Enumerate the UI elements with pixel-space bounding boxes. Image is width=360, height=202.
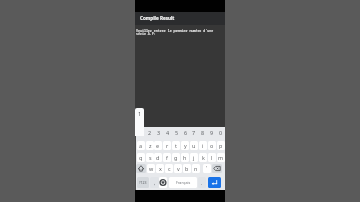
staticText: 9 [210,129,214,136]
button[interactable]: 4 [163,129,172,136]
staticText: 3 [157,129,161,136]
button[interactable]: ' [203,164,211,173]
staticText: 4 [166,129,170,136]
button[interactable]: x [156,164,164,173]
staticText: b [185,165,189,172]
button[interactable]: d [154,153,162,162]
staticText: t [175,142,177,149]
button[interactable]: q [137,153,145,162]
button[interactable] [208,177,221,188]
staticText: Compile Result [140,15,175,21]
staticText: 0 [219,129,223,136]
button[interactable]: n [192,164,200,173]
button[interactable]: 3 [154,129,163,136]
staticText: 7 [192,129,196,136]
button[interactable]: 0 [216,129,225,136]
button[interactable]: p [217,141,225,150]
staticText: ?123 [139,180,147,185]
staticText: z [149,142,152,149]
button[interactable]: l [208,153,216,162]
staticText: 1 [138,110,142,117]
button[interactable]: o [208,141,216,150]
button[interactable]: b [183,164,191,173]
staticText: c [168,165,171,172]
button[interactable]: 9 [207,129,216,136]
staticText: , [154,180,156,186]
staticText: 6 [184,129,188,136]
button[interactable]: m [217,153,225,162]
staticText: ' [206,165,208,172]
button[interactable]: j [190,153,198,162]
staticText: r [166,142,169,149]
staticText: 8 [201,129,205,136]
button[interactable]: . [198,177,206,188]
staticText: n [194,165,198,172]
staticText: s [149,154,152,161]
staticText: d [156,154,160,161]
button[interactable]: ?123 [137,177,149,188]
button[interactable]: g [172,153,180,162]
staticText: x [159,165,162,172]
staticText: . [201,180,203,186]
button[interactable]: Compile Result [135,12,225,26]
button[interactable]: s [146,153,154,162]
button[interactable]: 5 [172,129,181,136]
button[interactable]: Français [169,177,197,188]
button[interactable]: w [147,164,155,173]
staticText: h [183,154,187,161]
staticText: f [166,154,168,161]
staticText: v [177,165,180,172]
button[interactable]: 6 [181,129,190,136]
button[interactable]: k [199,153,207,162]
button[interactable]: c [165,164,173,173]
button[interactable]: r [163,141,171,150]
button[interactable]: z [146,141,154,150]
button[interactable]: f [163,153,171,162]
button[interactable]: a [137,141,145,150]
staticText: j [193,154,195,161]
staticText: l [211,154,213,161]
staticText: série A.P: [136,31,156,35]
staticText: Français [176,180,191,185]
staticText: y [184,142,187,149]
staticText: w [149,165,154,172]
staticText: a [139,142,143,149]
staticText: 2 [148,129,152,136]
button[interactable]: 2 [145,129,154,136]
button[interactable]: 1 [136,129,145,136]
button[interactable]: 1 [135,108,144,136]
staticText: o [210,142,214,149]
staticText: k [202,154,205,161]
staticText: 5 [175,129,179,136]
button[interactable]: u [190,141,198,150]
button[interactable]: i [199,141,207,150]
staticText: u [192,142,196,149]
button[interactable]: v [174,164,182,173]
button[interactable]: 7 [189,129,198,136]
staticText: i [202,142,204,149]
button[interactable]: 8 [198,129,207,136]
button[interactable] [212,164,222,173]
staticText: Veuillez entrer le premier numéro d'une [136,28,214,32]
button[interactable] [159,177,167,188]
staticText: e [156,142,160,149]
button[interactable]: e [154,141,162,150]
staticText: p [219,142,223,149]
button[interactable] [136,164,146,173]
button[interactable]: , [150,177,159,188]
button[interactable]: y [181,141,189,150]
staticText: q [139,154,143,161]
button[interactable]: t [172,141,180,150]
staticText: m [218,154,224,161]
staticText: g [174,154,178,161]
button[interactable]: h [181,153,189,162]
